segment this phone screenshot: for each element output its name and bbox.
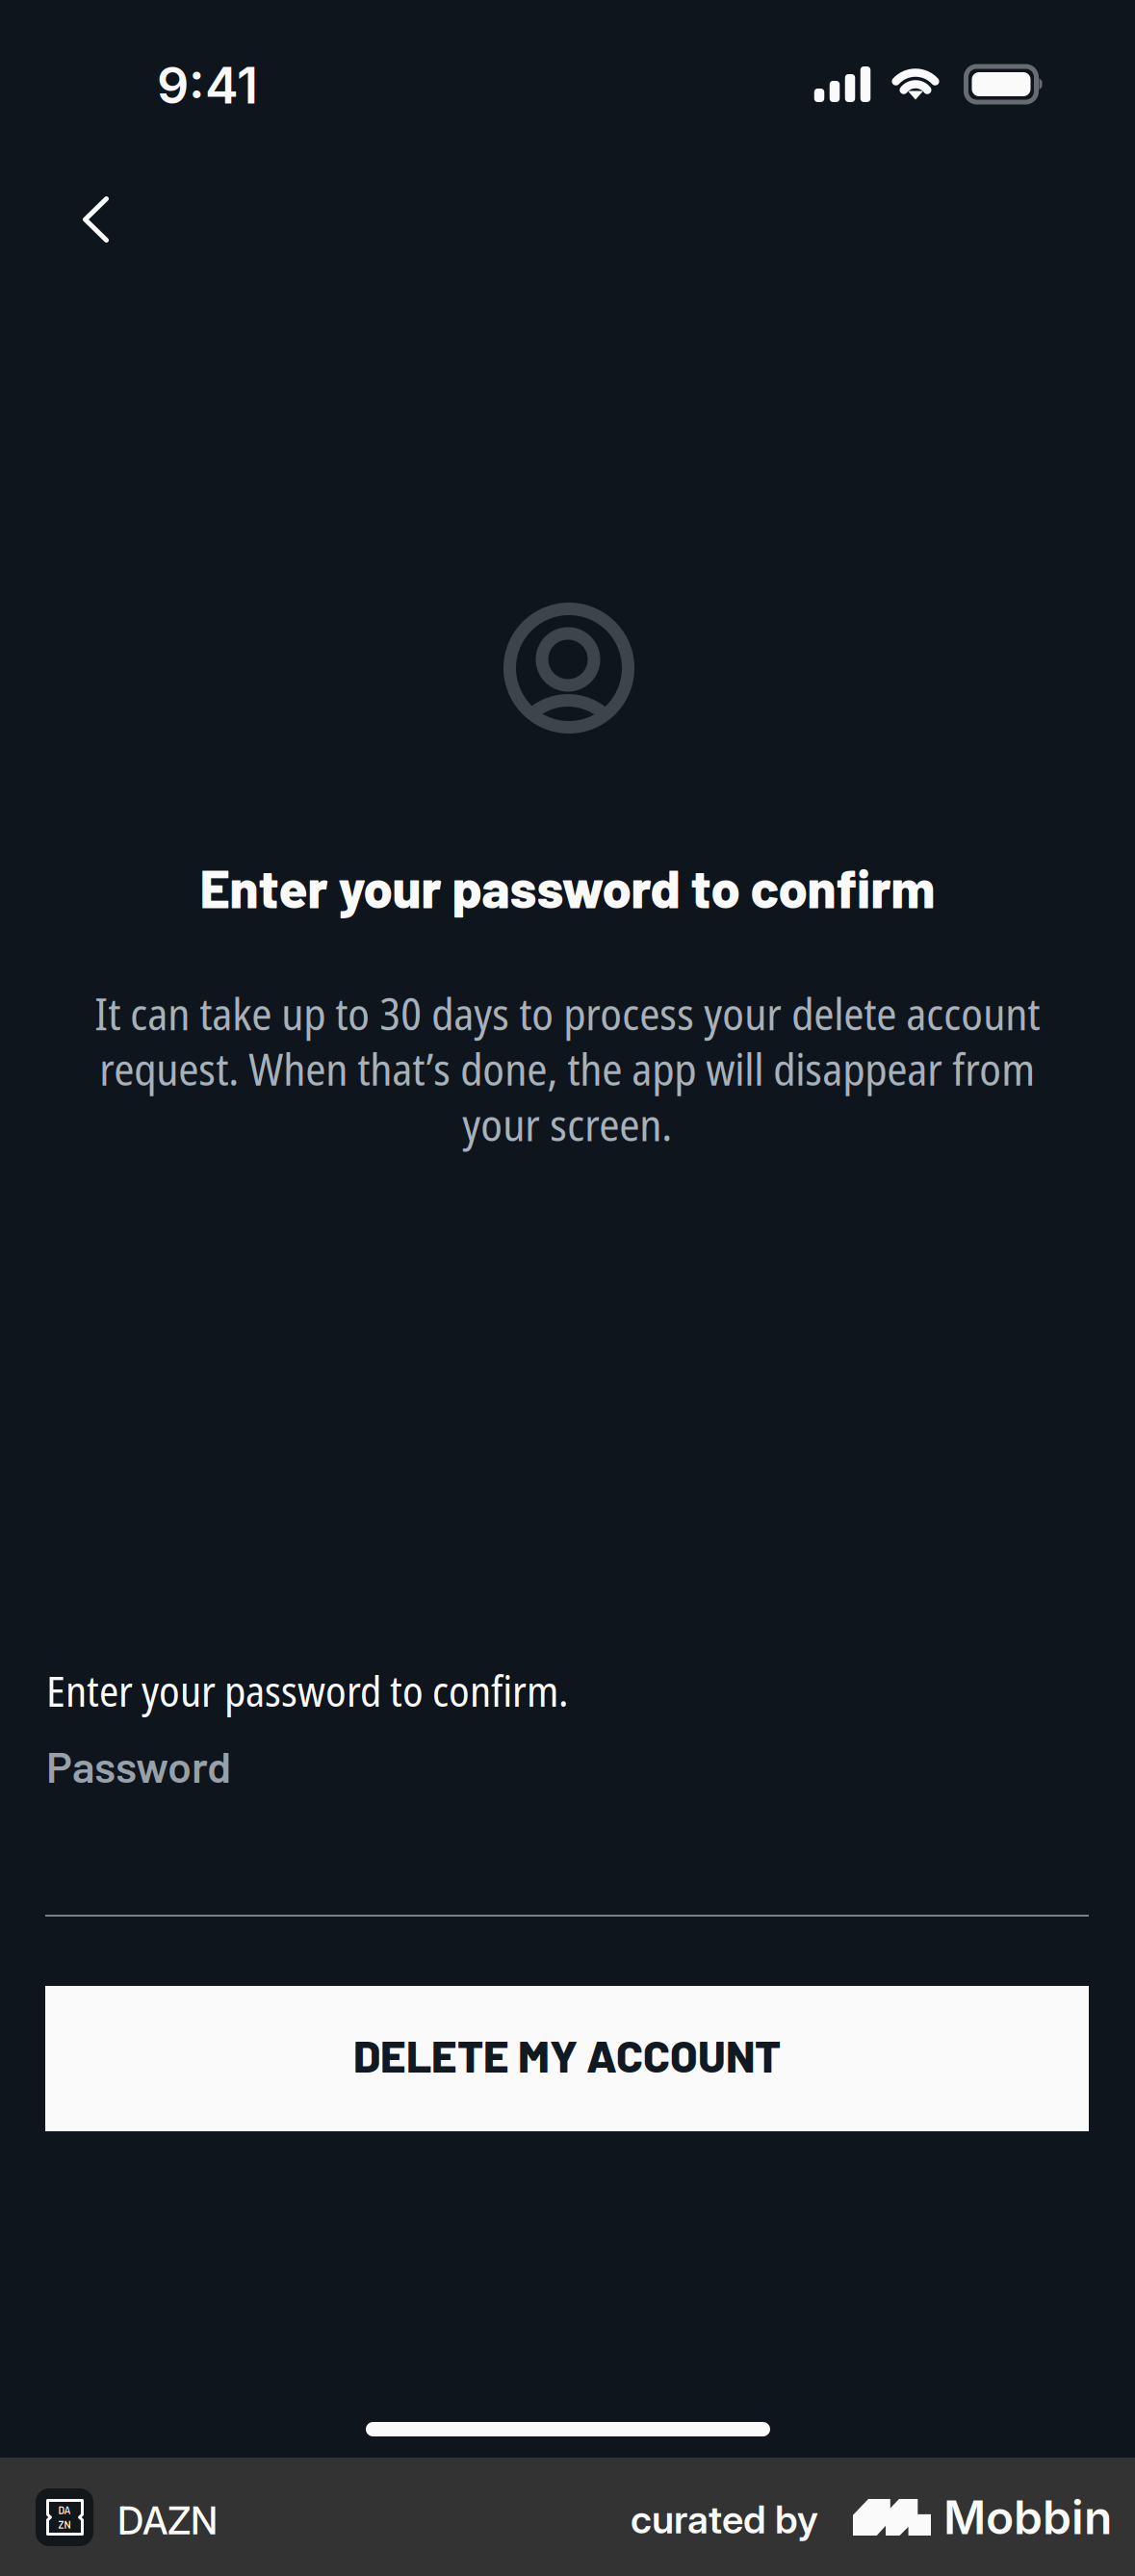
staticText: DAZN: [117, 2498, 218, 2543]
staticText: Enter your password to confirm: [200, 856, 935, 919]
staticText: DELETE MY ACCOUNT: [353, 2028, 781, 2081]
staticText: curated by: [631, 2496, 818, 2543]
staticText: Password: [46, 1739, 231, 1791]
staticText: It can take up to 30 days to process you…: [94, 983, 1040, 1154]
staticText: DA: [58, 2504, 71, 2516]
staticText: Enter your password to confirm.: [46, 1662, 569, 1719]
staticText: Mobbin: [943, 2489, 1112, 2545]
button[interactable]: Back: [42, 169, 177, 270]
button[interactable]: DELETE MY ACCOUNT: [45, 1986, 1089, 2131]
button[interactable]: Password: [45, 1729, 1089, 1917]
staticText: 9:41: [157, 55, 258, 115]
staticText: ZN: [58, 2518, 71, 2531]
